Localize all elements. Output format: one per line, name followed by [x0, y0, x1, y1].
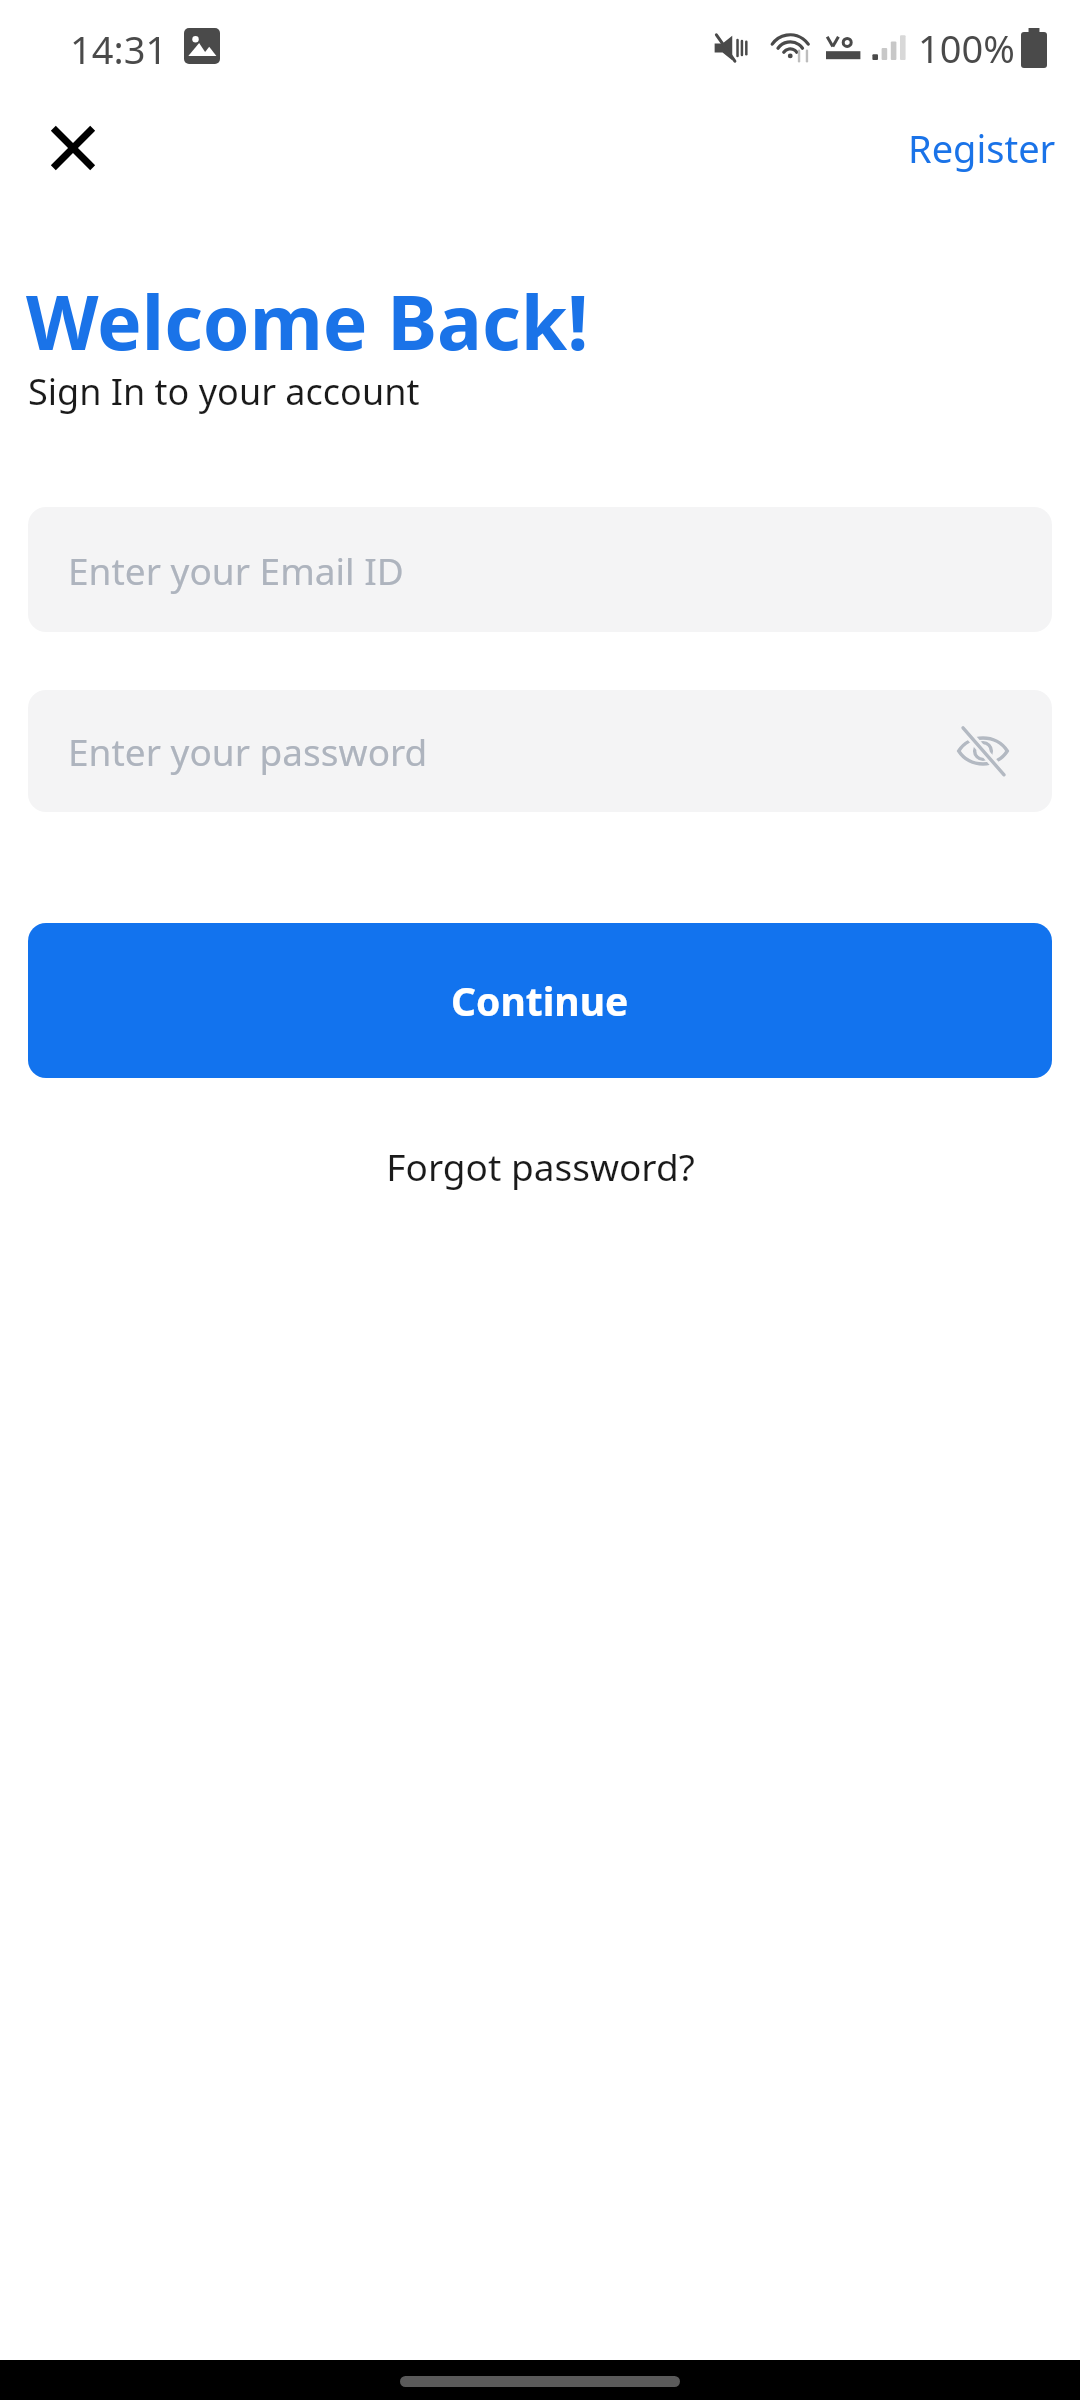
staticText: Forgot password?: [386, 1141, 695, 1191]
staticText: Continue: [451, 974, 629, 1027]
button[interactable]: Enter your Email ID: [28, 507, 1052, 632]
staticText: Register: [908, 122, 1056, 174]
staticText: Enter your password: [68, 726, 428, 776]
staticText: 100%: [918, 22, 1015, 74]
button[interactable]: Forgot password?: [0, 1133, 1080, 1199]
staticText: 14:31: [70, 23, 168, 75]
staticText: Welcome Back!: [26, 270, 589, 372]
button[interactable]: Enter your password: [28, 690, 1052, 812]
staticText: Sign In to your account: [28, 367, 420, 416]
staticText: Enter your Email ID: [68, 545, 404, 595]
button[interactable]: Register: [898, 108, 1066, 188]
button[interactable]: Show password: [952, 720, 1014, 782]
button[interactable]: Continue: [28, 923, 1052, 1078]
button[interactable]: Close: [29, 104, 117, 192]
